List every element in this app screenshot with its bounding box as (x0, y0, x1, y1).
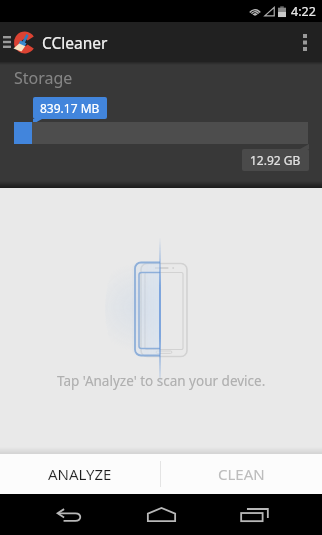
button[interactable]: CLEAN (161, 454, 322, 494)
staticText: Storage (14, 67, 73, 89)
button[interactable]: ANALYZE (0, 454, 160, 494)
button[interactable]: Open navigation drawer (0, 22, 13, 62)
staticText: 4:22 (291, 3, 316, 20)
staticText: ANALYZE (48, 464, 112, 484)
staticText: Tap 'Analyze' to scan your device. (57, 372, 266, 390)
button[interactable]: Recent apps (230, 494, 278, 535)
staticText: 839.17 MB (40, 100, 100, 116)
staticText: CLEAN (218, 464, 265, 484)
button[interactable]: More options (288, 22, 322, 62)
button[interactable]: Home (137, 494, 185, 535)
staticText: 12.92 GB (250, 152, 301, 168)
button[interactable]: Back (45, 494, 93, 535)
staticText: CCleaner (42, 32, 108, 53)
